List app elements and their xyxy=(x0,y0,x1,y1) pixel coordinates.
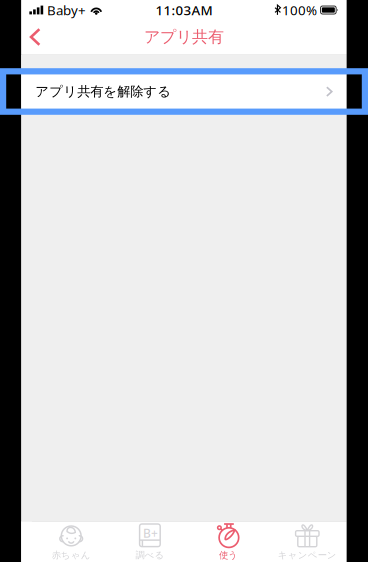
staticText: Baby+ xyxy=(47,1,86,19)
staticText: 赤ちゃん xyxy=(52,549,91,561)
button[interactable]: キャンペーン xyxy=(268,522,347,562)
button[interactable]: 戻る xyxy=(24,20,46,54)
staticText: 11:03AM xyxy=(155,1,212,19)
button[interactable]: 使う xyxy=(189,522,268,562)
staticText: 使う xyxy=(219,549,238,561)
staticText: 100% xyxy=(282,1,317,19)
staticText: キャンペーン xyxy=(278,549,337,561)
button[interactable]: アプリ共有を解除する xyxy=(21,74,347,109)
staticText: アプリ共有 xyxy=(144,27,224,47)
button[interactable]: B+ xyxy=(110,522,189,562)
staticText: B+ xyxy=(143,525,158,541)
button[interactable]: 赤ちゃん xyxy=(32,522,110,562)
staticText: アプリ共有を解除する xyxy=(35,83,171,100)
staticText: 調べる xyxy=(135,549,164,561)
